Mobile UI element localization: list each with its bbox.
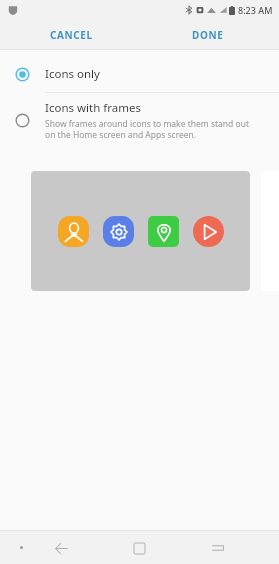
staticText: CANCEL xyxy=(50,28,93,42)
button[interactable]: Recents xyxy=(203,533,233,563)
staticText: 8:23 AM xyxy=(238,4,273,16)
staticText: DONE xyxy=(192,28,224,42)
button[interactable]: Home xyxy=(124,533,154,563)
button[interactable]: Back xyxy=(46,533,76,563)
button[interactable]: CANCEL xyxy=(40,24,103,46)
button[interactable]: DONE xyxy=(182,24,234,46)
button[interactable]: PLAY xyxy=(193,216,224,247)
button[interactable]: CONTACT xyxy=(58,216,89,247)
button[interactable]: PIN xyxy=(148,216,179,247)
button[interactable]: Icons only xyxy=(0,56,279,92)
staticText: Icons with frames xyxy=(45,100,141,116)
button[interactable]: Icons with frames xyxy=(0,93,279,149)
staticText: Icons only xyxy=(45,66,100,82)
button[interactable]: CONTACT xyxy=(31,171,250,291)
staticText: Show frames around icons to make them st… xyxy=(45,118,257,140)
button[interactable]: GEAR xyxy=(103,216,134,247)
